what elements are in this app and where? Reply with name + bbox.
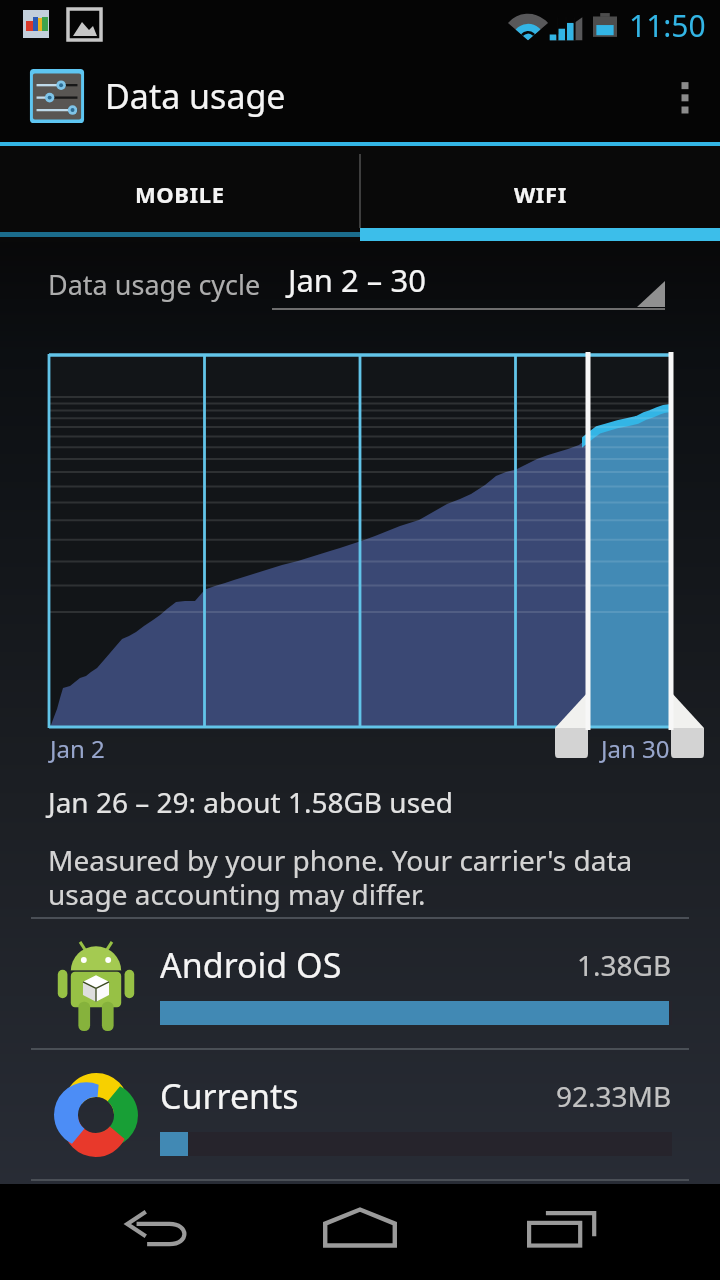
staticText: Android OS [160, 942, 342, 988]
staticText: MOBILE [135, 179, 225, 209]
button[interactable]: Back [75, 1184, 243, 1280]
button[interactable]: Home [276, 1184, 444, 1280]
staticText: 92.33MB [556, 1077, 672, 1115]
staticText: Jan 30 [601, 732, 670, 765]
staticText: WIFI [514, 179, 567, 209]
staticText: 11:50 [629, 5, 706, 46]
button[interactable]: MOBILE [0, 146, 360, 242]
staticText: Data usage cycle [48, 266, 261, 303]
staticText: Jan 26 – 29: about 1.58GB used [48, 783, 454, 821]
staticText: Jan 2 [50, 732, 105, 765]
button[interactable]: WIFI [360, 146, 720, 242]
button[interactable]: Android OS [0, 919, 720, 1048]
staticText: Jan 2 – 30 [288, 259, 426, 301]
staticText: Measured by your phone. Your carrier's d… [48, 841, 676, 913]
button[interactable]: More options [650, 50, 720, 142]
button[interactable]: Currents [0, 1050, 720, 1179]
staticText: Currents [160, 1073, 299, 1119]
staticText: Data usage [105, 73, 286, 119]
button[interactable]: Jan 2 – 30 [272, 251, 665, 317]
button[interactable]: Recent apps [478, 1184, 646, 1280]
staticText: 1.38GB [577, 946, 672, 984]
button[interactable]: Up [24, 63, 90, 129]
